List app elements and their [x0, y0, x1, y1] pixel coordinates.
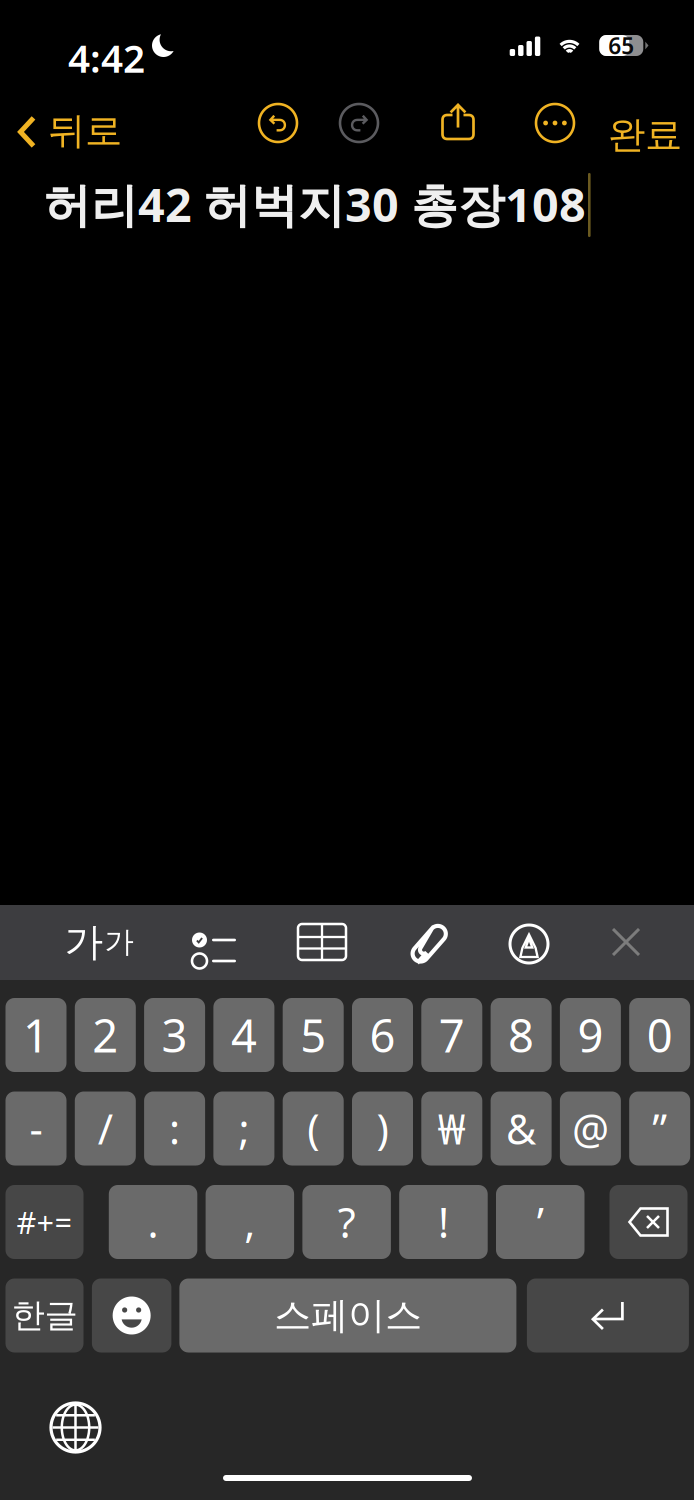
- button[interactable]: Attach: [402, 917, 456, 971]
- staticText: -: [29, 1101, 42, 1156]
- staticText: 6: [369, 1005, 395, 1065]
- button[interactable]: 완료: [600, 103, 690, 167]
- staticText: 65: [608, 30, 634, 60]
- staticText: #+=: [16, 1202, 72, 1242]
- staticText: ’: [537, 1195, 544, 1249]
- button[interactable]: #+=: [5, 1185, 83, 1259]
- button[interactable]: Redo: [339, 103, 379, 143]
- button[interactable]: Markup: [509, 923, 549, 965]
- button[interactable]: Delete: [609, 1185, 687, 1259]
- staticText: 완료: [608, 112, 682, 158]
- staticText: ?: [338, 1195, 356, 1249]
- button[interactable]: 뒤로: [10, 99, 130, 165]
- staticText: 4: [231, 1005, 257, 1065]
- staticText: 허리42 허벅지30 총장108: [44, 173, 586, 235]
- button[interactable]: 2: [75, 998, 136, 1072]
- button[interactable]: 7: [421, 998, 482, 1072]
- staticText: 7: [439, 1005, 465, 1065]
- button[interactable]: Table: [297, 923, 347, 961]
- button[interactable]: 5: [283, 998, 344, 1072]
- button[interactable]: Emoji: [92, 1278, 171, 1352]
- button[interactable]: Dismiss keyboard: [611, 927, 641, 957]
- staticText: ): [376, 1101, 388, 1156]
- staticText: @: [572, 1101, 609, 1156]
- staticText: 가: [104, 924, 133, 960]
- button[interactable]: &: [491, 1091, 552, 1165]
- button[interactable]: 6: [352, 998, 413, 1072]
- button[interactable]: Undo: [258, 103, 298, 143]
- staticText: 5: [300, 1005, 326, 1065]
- button[interactable]: ₩: [421, 1091, 482, 1165]
- staticText: 1: [23, 1005, 49, 1065]
- staticText: (: [307, 1101, 319, 1156]
- button[interactable]: 한글: [5, 1278, 83, 1352]
- button[interactable]: @: [560, 1091, 621, 1165]
- button[interactable]: (: [283, 1091, 344, 1165]
- button[interactable]: 9: [560, 998, 621, 1072]
- button[interactable]: 4: [213, 998, 274, 1072]
- button[interactable]: ,: [206, 1185, 294, 1259]
- staticText: :: [169, 1101, 180, 1156]
- staticText: ”: [652, 1101, 667, 1156]
- button[interactable]: -: [5, 1091, 66, 1165]
- button[interactable]: /: [75, 1091, 136, 1165]
- staticText: 4:42: [68, 32, 145, 83]
- staticText: !: [438, 1195, 449, 1249]
- staticText: /: [98, 1101, 113, 1156]
- staticText: 9: [577, 1005, 603, 1065]
- staticText: 뒤로: [48, 108, 122, 154]
- staticText: 스페이스: [274, 1293, 422, 1338]
- button[interactable]: ): [352, 1091, 413, 1165]
- button[interactable]: 8: [491, 998, 552, 1072]
- button[interactable]: ”: [629, 1091, 690, 1165]
- staticText: 2: [92, 1005, 118, 1065]
- button[interactable]: .: [109, 1185, 197, 1259]
- button[interactable]: 0: [629, 998, 690, 1072]
- button[interactable]: Format: [71, 923, 127, 961]
- staticText: .: [148, 1195, 159, 1249]
- button[interactable]: Next keyboard: [51, 1403, 100, 1452]
- button[interactable]: :: [144, 1091, 205, 1165]
- staticText: ;: [238, 1101, 249, 1156]
- button[interactable]: ’: [496, 1185, 584, 1259]
- button[interactable]: Share: [441, 103, 475, 141]
- staticText: ₩: [438, 1101, 466, 1156]
- button[interactable]: ?: [302, 1185, 391, 1259]
- button[interactable]: Checklist: [182, 922, 226, 958]
- button[interactable]: Return: [527, 1278, 689, 1352]
- button[interactable]: 1: [5, 998, 66, 1072]
- button[interactable]: !: [399, 1185, 488, 1259]
- staticText: 3: [162, 1005, 188, 1065]
- button[interactable]: More: [535, 103, 575, 143]
- staticText: 가: [64, 918, 103, 966]
- button[interactable]: 3: [144, 998, 205, 1072]
- staticText: 8: [508, 1005, 534, 1065]
- button[interactable]: ;: [213, 1091, 274, 1165]
- staticText: 한글: [11, 1295, 77, 1336]
- staticText: 0: [647, 1005, 673, 1065]
- staticText: ,: [244, 1195, 255, 1249]
- staticText: &: [506, 1101, 536, 1156]
- button[interactable]: 스페이스: [179, 1278, 516, 1352]
